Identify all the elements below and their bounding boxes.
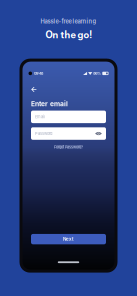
staticText: 86% — [93, 71, 101, 76]
button[interactable]: Back — [29, 85, 39, 94]
staticText: Forgot Password? — [54, 145, 83, 149]
staticText: On the go! — [45, 29, 91, 41]
staticText: Password — [35, 131, 52, 136]
button[interactable]: Forgot Password? — [22, 144, 114, 150]
staticText: Enter email — [31, 100, 68, 108]
staticText: 09:48 — [34, 71, 43, 76]
button[interactable]: Show password — [94, 128, 102, 139]
staticText: Email — [35, 114, 45, 119]
button[interactable]: Next — [31, 234, 106, 244]
staticText: Next — [63, 236, 74, 242]
staticText: Hassle-free learning — [40, 18, 96, 25]
